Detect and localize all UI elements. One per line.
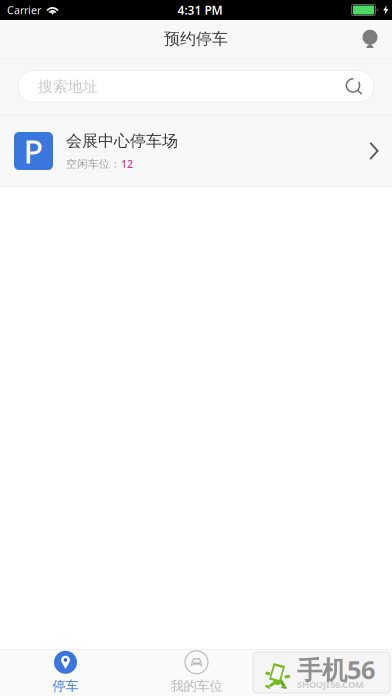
staticText: 手机56: [297, 653, 375, 686]
staticText: 空闲车位：: [66, 157, 121, 170]
staticText: 我的车位: [170, 678, 222, 694]
button[interactable]: 停车: [0, 649, 131, 696]
staticText: 4:31 PM: [177, 2, 222, 18]
staticText: 停车: [52, 678, 78, 694]
staticText: SHOUJI56.COM: [297, 678, 364, 691]
staticText: 预约停车: [164, 29, 228, 49]
staticText: 会展中心停车场: [66, 131, 178, 151]
button[interactable]: Profile: [348, 20, 392, 58]
staticText: Carrier: [7, 3, 41, 17]
staticText: P: [23, 130, 43, 172]
staticText: 12: [121, 157, 133, 171]
button[interactable]: P: [0, 116, 392, 186]
button[interactable]: 搜索地址: [18, 70, 374, 102]
button[interactable]: 我的车位: [131, 649, 262, 696]
staticText: 搜索地址: [38, 77, 98, 95]
